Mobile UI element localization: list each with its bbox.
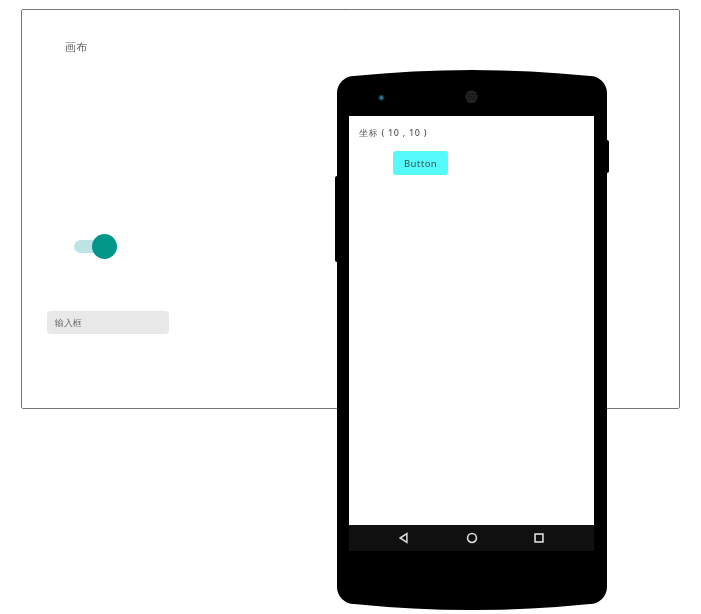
button[interactable]: Home bbox=[457, 525, 487, 551]
button[interactable]: Back bbox=[389, 525, 419, 551]
button[interactable]: Recent apps bbox=[524, 525, 554, 551]
staticText: 输入框 bbox=[55, 317, 82, 328]
staticText: 画布 bbox=[65, 40, 87, 54]
button[interactable]: Toggle switch, on bbox=[74, 234, 117, 259]
staticText: Button bbox=[404, 157, 438, 170]
button[interactable]: 输入框 bbox=[47, 311, 169, 334]
button[interactable]: Button bbox=[393, 151, 448, 175]
staticText: 坐标 ( 10 , 10 ) bbox=[359, 126, 428, 138]
